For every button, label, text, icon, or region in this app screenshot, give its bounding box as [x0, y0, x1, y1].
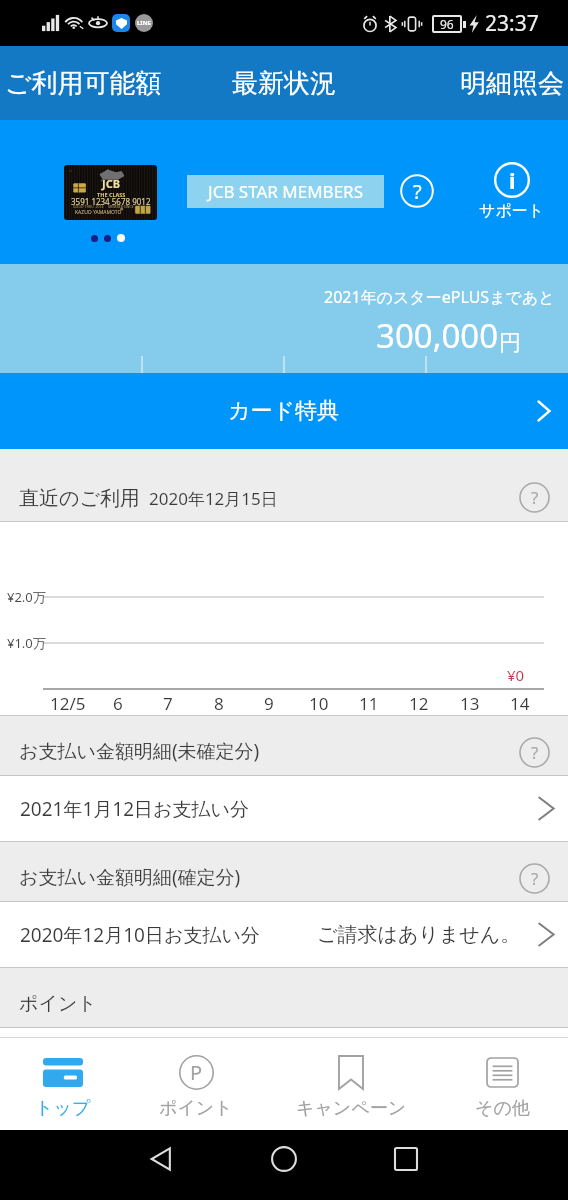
staticText: 明細照会 [460, 67, 564, 100]
staticText: 14 [510, 692, 530, 715]
staticText: 2020年12月15日 [149, 487, 278, 510]
staticText: 最新状況 [232, 67, 336, 100]
staticText: ? [531, 867, 539, 890]
button[interactable]: 戻る [132, 1130, 190, 1188]
staticText: JCB [102, 176, 121, 191]
staticText: 96 [440, 16, 454, 32]
staticText: 直近のご利用 [19, 486, 140, 511]
button[interactable]: ヘルプ [519, 863, 550, 894]
staticText: ポイント [19, 992, 97, 1016]
staticText: ¥1.0万 [7, 634, 46, 652]
button[interactable]: キャンペーン [288, 1038, 414, 1130]
staticText: 2021年のスターePLUSまであと [324, 286, 555, 308]
staticText: サポート [479, 201, 545, 221]
staticText: カード特典 [228, 397, 340, 425]
staticText: ¥0 [507, 665, 525, 685]
staticText: 7 [163, 692, 173, 715]
button[interactable]: 最近のアプリ [377, 1130, 435, 1188]
staticText: 11 [359, 692, 379, 715]
staticText: ? [531, 486, 539, 509]
staticText: GOOD THRU 2014 MEMBER SINCE 00/00 [73, 204, 143, 209]
staticText: キャンペーン [296, 1097, 407, 1120]
staticText: 3591 1234 5678 9012 [71, 196, 151, 207]
button[interactable]: ホーム [255, 1130, 313, 1188]
staticText: ? [531, 741, 539, 764]
staticText: 8 [214, 692, 224, 715]
staticText: 9 [264, 692, 274, 715]
button[interactable]: P [133, 1038, 259, 1130]
staticText: 300,000 [376, 313, 499, 358]
button[interactable]: 2020年12月10日お支払い分 [0, 902, 568, 967]
staticText: ポイント [159, 1097, 233, 1120]
button[interactable]: i [474, 162, 550, 221]
button[interactable]: ヘルプ [400, 174, 434, 208]
staticText: 13 [460, 692, 480, 715]
button[interactable]: JCB STAR MEMBERS [187, 175, 384, 208]
staticText: ? [413, 178, 422, 205]
button[interactable]: 2021年1月12日お支払い分 [0, 776, 568, 841]
button[interactable]: 最新状況 [194, 46, 374, 120]
staticText: ¥2.0万 [7, 588, 46, 606]
staticText: お支払い金額明細(確定分) [19, 864, 241, 890]
button[interactable]: その他 [439, 1038, 565, 1130]
staticText: 23:37 [485, 9, 539, 38]
staticText: ご利用可能額 [5, 67, 162, 100]
button[interactable]: ご利用可能額 [0, 46, 170, 120]
staticText: ご請求はありません。 [317, 922, 521, 947]
staticText: P [190, 1059, 203, 1086]
staticText: KAZUO YAMAMOTO [75, 209, 122, 216]
staticText: 12/5 [50, 692, 86, 715]
staticText: 2021年1月12日お支払い分 [20, 796, 249, 822]
staticText: 円 [499, 329, 521, 357]
staticText: 2020年12月10日お支払い分 [20, 922, 260, 948]
staticText: JCB STAR MEMBERS [208, 180, 364, 203]
staticText: LINE [137, 19, 151, 27]
staticText: トップ [35, 1097, 91, 1120]
staticText: THE CLASS [97, 191, 126, 198]
button[interactable]: ヘルプ [519, 737, 550, 768]
button[interactable]: ヘルプ [519, 482, 550, 513]
staticText: i [509, 165, 516, 195]
staticText: その他 [475, 1097, 530, 1120]
staticText: お支払い金額明細(未確定分) [19, 738, 260, 764]
button[interactable]: トップ [0, 1038, 126, 1130]
staticText: 10 [309, 692, 329, 715]
staticText: 6 [113, 692, 123, 715]
button[interactable]: 明細照会 [418, 46, 568, 120]
button[interactable]: JCB [64, 165, 157, 220]
button[interactable]: カード特典 [0, 373, 568, 449]
staticText: 12 [409, 692, 429, 715]
